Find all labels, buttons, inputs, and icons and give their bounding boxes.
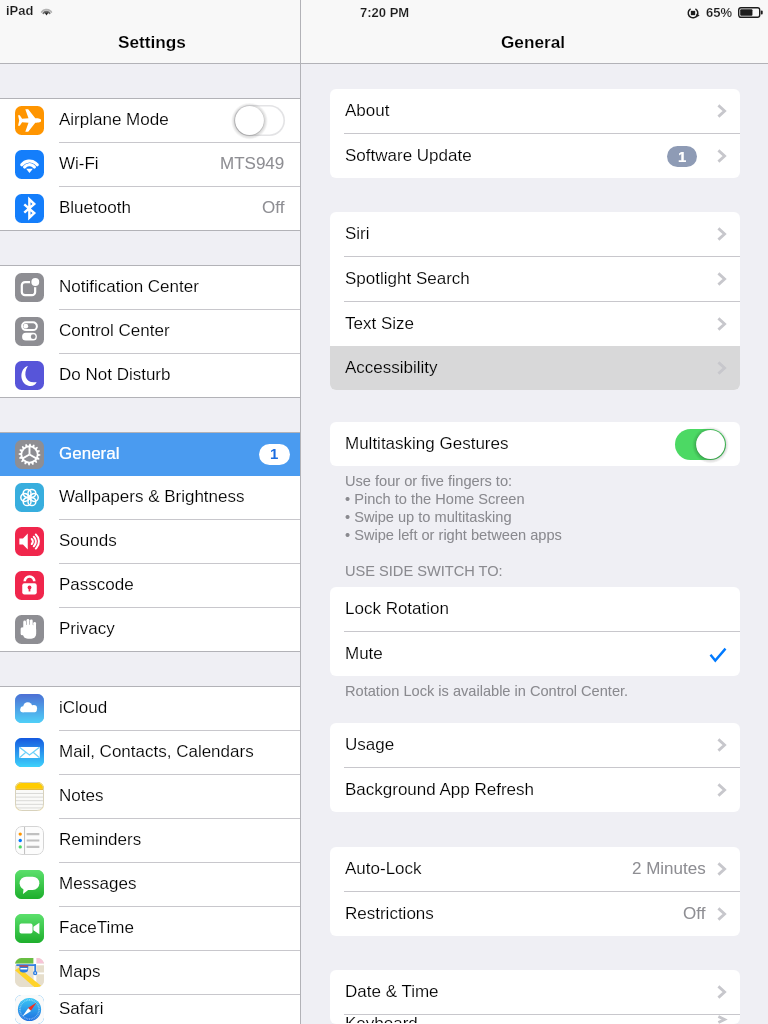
staticText: • Swipe up to multitasking [345, 509, 512, 525]
button[interactable]: Date & Time [330, 970, 740, 1014]
staticText: FaceTime [59, 918, 134, 937]
staticText: MTS949 [220, 154, 285, 173]
staticText: 1 [270, 445, 279, 462]
staticText: iCloud [59, 698, 108, 717]
button[interactable]: Mute [330, 632, 740, 676]
staticText: USE SIDE SWITCH TO: [345, 563, 503, 579]
staticText: 1 [678, 148, 687, 165]
staticText: iPad [6, 3, 34, 18]
button[interactable]: Usage [330, 723, 740, 767]
button[interactable]: Accessibility [330, 346, 740, 390]
button[interactable]: About [330, 89, 740, 133]
button[interactable]: Messages [0, 863, 300, 906]
button[interactable]: Siri [330, 212, 740, 256]
staticText: Lock Rotation [345, 599, 449, 618]
button[interactable]: Keyboard [330, 1015, 740, 1024]
other: Open [717, 227, 726, 241]
staticText: Off [683, 904, 706, 923]
button[interactable]: Passcode [0, 564, 300, 607]
staticText: Usage [345, 735, 395, 754]
staticText: 7:20 PM [360, 5, 410, 20]
staticText: 65% [706, 5, 733, 20]
staticText: Passcode [59, 575, 134, 594]
staticText: Keyboard [345, 1014, 418, 1023]
button[interactable]: Reminders [0, 819, 300, 862]
button[interactable]: Bluetooth [0, 187, 300, 230]
staticText: Restrictions [345, 904, 434, 923]
staticText: Text Size [345, 314, 414, 333]
staticText: • Pinch to the Home Screen [345, 491, 525, 507]
staticText: Software Update [345, 146, 472, 165]
button[interactable]: Mail, Contacts, Calendars [0, 731, 300, 774]
staticText: Privacy [59, 619, 115, 638]
other: Open [717, 738, 726, 752]
button[interactable]: Notes [0, 775, 300, 818]
button[interactable]: Lock Rotation [330, 587, 740, 631]
staticText: Accessibility [345, 358, 438, 377]
other: Open [717, 907, 726, 921]
staticText: General [501, 32, 566, 51]
other: Open [717, 361, 726, 375]
button[interactable]: Do Not Disturb [0, 354, 300, 397]
staticText: Messages [59, 874, 137, 893]
staticText: Do Not Disturb [59, 365, 171, 384]
staticText: Spotlight Search [345, 269, 470, 288]
staticText: Bluetooth [59, 198, 131, 217]
staticText: Notes [59, 786, 104, 805]
button[interactable]: Spotlight Search [330, 257, 740, 301]
other: Open [717, 1015, 726, 1024]
button[interactable]: Restrictions [330, 892, 740, 936]
staticText: Maps [59, 962, 101, 981]
button[interactable]: Background App Refresh [330, 768, 740, 812]
other: Open [717, 783, 726, 797]
staticText: Mail, Contacts, Calendars [59, 742, 254, 761]
button[interactable]: Sounds [0, 520, 300, 563]
button[interactable]: Notification Center [0, 266, 300, 309]
other: Open [717, 149, 726, 163]
staticText: Notification Center [59, 277, 199, 296]
staticText: Date & Time [345, 982, 439, 1001]
button[interactable]: Auto-Lock [330, 847, 740, 891]
other: Open [717, 985, 726, 999]
button[interactable]: Wallpapers & Brightness [0, 476, 300, 519]
button[interactable]: General [0, 433, 300, 476]
button[interactable]: Wi-Fi [0, 143, 300, 186]
button[interactable]: Privacy [0, 608, 300, 651]
staticText: Control Center [59, 321, 170, 340]
button[interactable]: Control Center [0, 310, 300, 353]
staticText: About [345, 101, 390, 120]
button[interactable]: Airplane Mode [0, 99, 300, 142]
other: Open [717, 317, 726, 331]
staticText: Reminders [59, 830, 142, 849]
staticText: Wallpapers & Brightness [59, 487, 245, 506]
staticText: 2 Minutes [632, 859, 706, 878]
staticText: Sounds [59, 531, 117, 550]
button[interactable]: Maps [0, 951, 300, 994]
other: Open [717, 104, 726, 118]
staticText: Settings [118, 32, 186, 51]
button[interactable]: Safari [0, 995, 300, 1024]
staticText: Background App Refresh [345, 780, 535, 799]
other: Open [717, 862, 726, 876]
staticText: Use four or five fingers to: [345, 473, 513, 489]
staticText: Multitasking Gestures [345, 434, 509, 453]
staticText: Off [262, 198, 285, 217]
button[interactable]: Text Size [330, 302, 740, 346]
button[interactable]: Multitasking Gestures [330, 422, 740, 466]
staticText: General [59, 444, 120, 463]
staticText: • Swipe left or right between apps [345, 527, 562, 543]
staticText: Safari [59, 999, 104, 1018]
staticText: Auto-Lock [345, 859, 422, 878]
button[interactable]: FaceTime [0, 907, 300, 950]
staticText: Siri [345, 224, 370, 243]
staticText: Mute [345, 644, 383, 663]
other: Open [717, 272, 726, 286]
button[interactable]: Software Update [330, 134, 740, 178]
staticText: Airplane Mode [59, 110, 169, 129]
staticText: Wi-Fi [59, 154, 99, 173]
button[interactable]: iCloud [0, 687, 300, 730]
staticText: Rotation Lock is available in Control Ce… [345, 683, 629, 699]
